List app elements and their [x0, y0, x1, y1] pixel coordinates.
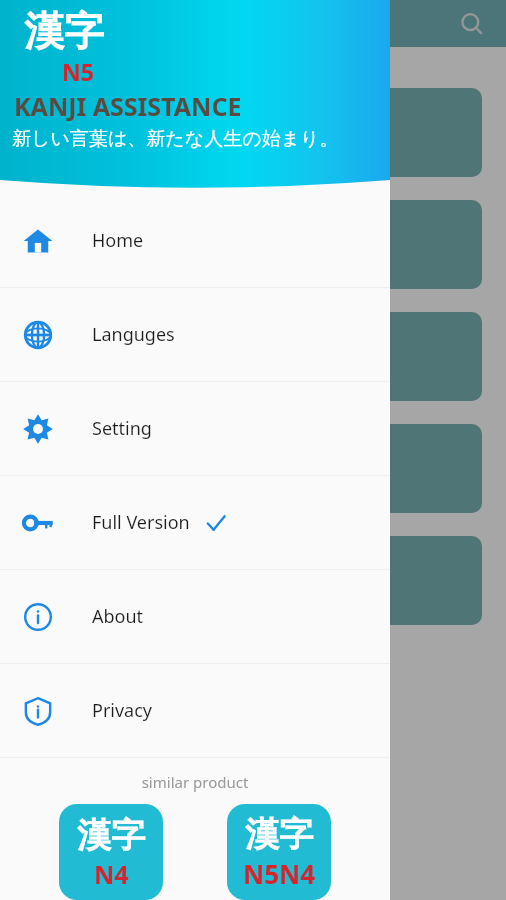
button[interactable]: Search — [452, 4, 492, 44]
staticText: 漢字 — [24, 6, 104, 56]
button[interactable] — [24, 88, 482, 177]
button[interactable] — [24, 312, 482, 401]
button[interactable]: Kanji N4 app — [59, 804, 163, 900]
staticText: 漢字 — [77, 814, 145, 857]
button[interactable]: Kanji N5N4 app — [227, 804, 331, 900]
staticText: Languges — [92, 322, 175, 347]
staticText: Setting — [92, 416, 152, 441]
staticText: Privacy — [92, 698, 153, 723]
button[interactable]: About — [0, 570, 390, 663]
staticText: N4 — [94, 857, 129, 891]
button[interactable]: Home — [0, 194, 390, 287]
staticText: 漢字 — [245, 813, 313, 856]
staticText: Home — [92, 228, 144, 253]
button[interactable] — [24, 536, 482, 625]
staticText: N5N4 — [243, 856, 316, 891]
button[interactable]: Setting — [0, 382, 390, 475]
button[interactable]: Privacy — [0, 664, 390, 757]
staticText: 新しい言葉は、新たな人生の始まり。 — [12, 127, 339, 151]
staticText: Full Version — [92, 510, 190, 535]
staticText: KANJI ASSISTANCE — [14, 89, 242, 123]
staticText: N5 — [62, 56, 94, 87]
button[interactable]: Languges — [0, 288, 390, 381]
button[interactable]: Full Version — [0, 476, 390, 569]
button[interactable] — [24, 200, 482, 289]
staticText: similar product — [0, 772, 390, 792]
staticText: About — [92, 604, 144, 629]
button[interactable] — [24, 424, 482, 513]
